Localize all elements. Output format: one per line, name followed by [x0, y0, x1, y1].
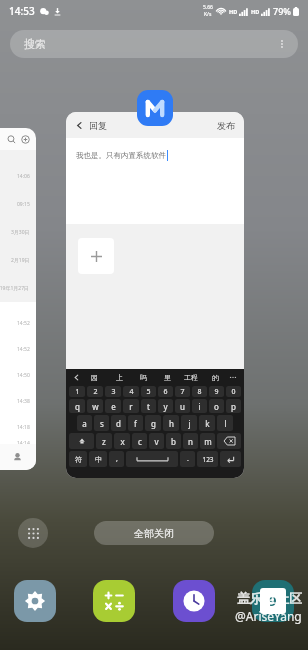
- button[interactable]: 0: [226, 386, 241, 397]
- staticText: p: [231, 401, 236, 412]
- staticText: 发布: [217, 120, 235, 131]
- button[interactable]: 2: [87, 386, 103, 397]
- staticText: 123: [202, 455, 214, 464]
- button[interactable]: w: [87, 399, 103, 413]
- button[interactable]: e: [105, 399, 121, 413]
- button[interactable]: f: [128, 415, 143, 431]
- staticText: 我也是。只有内置系统软件: [76, 151, 166, 160]
- staticText: r: [129, 401, 133, 412]
- button[interactable]: s: [94, 415, 109, 431]
- staticText: 14:18: [17, 424, 30, 431]
- button[interactable]: a: [77, 415, 92, 431]
- staticText: 6: [163, 387, 168, 397]
- button[interactable]: Settings: [14, 580, 56, 622]
- button[interactable]: 5: [141, 386, 156, 397]
- button[interactable]: Clock: [173, 580, 215, 622]
- button[interactable]: u: [175, 399, 190, 413]
- button[interactable]: 里: [155, 373, 179, 382]
- staticText: n: [188, 436, 193, 447]
- staticText: d: [116, 418, 121, 429]
- button[interactable]: 9: [209, 386, 224, 397]
- button[interactable]: n: [183, 433, 198, 449]
- button[interactable]: 123: [197, 451, 218, 467]
- staticText: w: [92, 401, 99, 412]
- button[interactable]: Key: [217, 433, 241, 449]
- button[interactable]: o: [209, 399, 224, 413]
- button[interactable]: v: [149, 433, 164, 449]
- button[interactable]: 吗: [131, 373, 155, 382]
- staticText: z: [102, 436, 106, 447]
- staticText: 1: [75, 387, 80, 397]
- staticText: 里: [164, 373, 171, 382]
- button[interactable]: [71, 374, 82, 381]
- button[interactable]: Calendar: [252, 580, 294, 622]
- button[interactable]: 的: [203, 373, 227, 382]
- button[interactable]: j: [181, 415, 197, 431]
- button[interactable]: 工程: [179, 373, 203, 382]
- button[interactable]: g: [145, 415, 161, 431]
- button[interactable]: [227, 373, 239, 381]
- button[interactable]: 8: [192, 386, 207, 397]
- button[interactable]: 14:06: [0, 128, 36, 470]
- staticText: e: [111, 401, 116, 412]
- button[interactable]: 上: [107, 373, 131, 382]
- button[interactable]: 我也是。只有内置系统软件: [66, 138, 244, 224]
- button[interactable]: 1: [69, 386, 85, 397]
- button[interactable]: 6: [158, 386, 173, 397]
- staticText: 工程: [184, 373, 198, 382]
- button[interactable]: y: [158, 399, 173, 413]
- button[interactable]: 搜索: [10, 30, 298, 58]
- button[interactable]: Key: [69, 433, 94, 449]
- staticText: K/s: [204, 11, 212, 18]
- button[interactable]: Key: [126, 451, 178, 467]
- button[interactable]: Key: [220, 451, 241, 467]
- staticText: 2019年1月27日: [0, 285, 30, 292]
- staticText: 园: [91, 373, 98, 382]
- button[interactable]: c: [132, 433, 147, 449]
- staticText: 吗: [140, 373, 147, 382]
- staticText: m: [204, 436, 212, 447]
- button[interactable]: ,: [109, 451, 124, 467]
- button[interactable]: p: [226, 399, 241, 413]
- staticText: HD: [229, 8, 238, 15]
- staticText: 3月30日: [11, 229, 30, 236]
- staticText: l: [224, 418, 227, 429]
- button[interactable]: Calculator: [93, 580, 135, 622]
- button[interactable]: Add attachment: [78, 238, 114, 274]
- button[interactable]: 符: [69, 451, 87, 467]
- staticText: s: [100, 418, 104, 429]
- staticText: 09:15: [17, 201, 30, 208]
- staticText: 上: [116, 373, 123, 382]
- button[interactable]: 中: [89, 451, 107, 467]
- button[interactable]: 全部关闭: [94, 521, 214, 545]
- button[interactable]: q: [69, 399, 85, 413]
- staticText: 14:52: [17, 346, 30, 353]
- button[interactable]: z: [96, 433, 112, 449]
- button[interactable]: 7: [175, 386, 190, 397]
- button[interactable]: l: [217, 415, 233, 431]
- button[interactable]: d: [111, 415, 126, 431]
- staticText: 全部关闭: [134, 527, 174, 540]
- staticText: 5: [146, 387, 151, 397]
- button[interactable]: r: [123, 399, 139, 413]
- staticText: 4: [129, 387, 134, 397]
- staticText: a: [82, 418, 87, 429]
- staticText: j: [188, 418, 191, 429]
- button[interactable]: 4: [123, 386, 139, 397]
- button[interactable]: App drawer: [18, 518, 48, 548]
- button[interactable]: App icon: [137, 90, 173, 126]
- button[interactable]: 回复: [73, 118, 109, 133]
- button[interactable]: .: [180, 451, 195, 467]
- button[interactable]: b: [166, 433, 181, 449]
- button[interactable]: x: [114, 433, 130, 449]
- button[interactable]: 园: [82, 373, 107, 382]
- button[interactable]: h: [163, 415, 179, 431]
- button[interactable]: i: [192, 399, 207, 413]
- button[interactable]: m: [200, 433, 215, 449]
- button[interactable]: k: [199, 415, 215, 431]
- button[interactable]: t: [141, 399, 156, 413]
- button[interactable]: 3: [105, 386, 121, 397]
- staticText: 搜索: [24, 37, 46, 51]
- button[interactable]: More options: [274, 36, 290, 52]
- button[interactable]: 发布: [215, 118, 237, 133]
